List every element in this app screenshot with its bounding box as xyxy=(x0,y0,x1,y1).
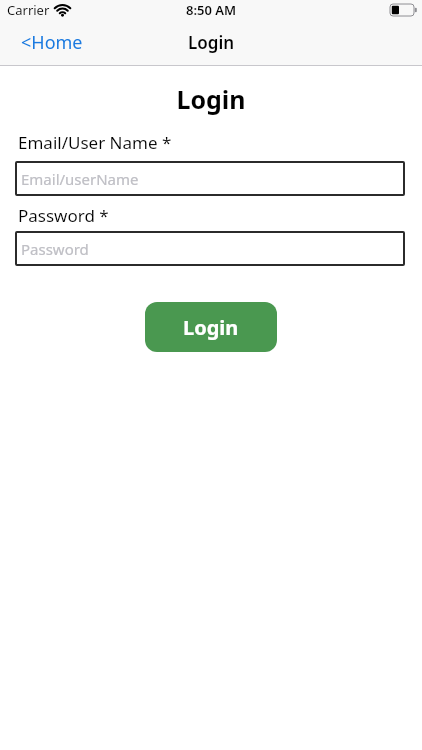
button[interactable]: Password xyxy=(15,231,405,266)
staticText: Login xyxy=(183,314,239,341)
button[interactable]: Login xyxy=(145,302,277,352)
staticText: Email/userName xyxy=(21,169,139,189)
staticText: Email/User Name * xyxy=(18,131,172,154)
staticText: Carrier xyxy=(7,1,50,19)
staticText: 8:50 AM xyxy=(186,1,237,19)
staticText: Login xyxy=(0,82,422,116)
button[interactable]: Email/userName xyxy=(15,161,405,196)
staticText: Password * xyxy=(18,204,109,227)
staticText: Password xyxy=(21,239,89,259)
staticText: Login xyxy=(188,31,235,54)
button[interactable]: <Home xyxy=(21,30,83,55)
